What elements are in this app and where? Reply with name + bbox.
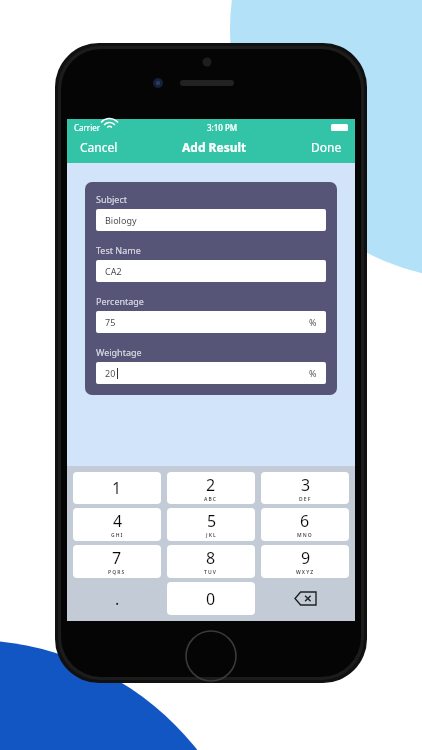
staticText: Subject	[96, 193, 128, 205]
staticText: 3	[301, 474, 311, 496]
staticText: Done	[311, 139, 342, 155]
button[interactable]: CA2	[96, 260, 326, 282]
staticText: %	[309, 316, 317, 328]
button[interactable]: 8	[167, 545, 255, 578]
staticText: %	[309, 367, 317, 379]
staticText: MNO	[297, 532, 313, 539]
staticText: WXYZ	[296, 569, 315, 576]
staticText: 1	[112, 477, 122, 499]
staticText: Percentage	[96, 295, 144, 307]
button[interactable]: 75	[96, 311, 326, 333]
button[interactable]: Delete	[258, 582, 352, 615]
button[interactable]: Done	[308, 136, 345, 158]
staticText: 0	[206, 588, 216, 610]
staticText: ABC	[204, 496, 218, 503]
staticText: 9	[301, 547, 311, 569]
staticText: Add Result	[182, 139, 247, 155]
button[interactable]: Cancel	[77, 136, 121, 158]
staticText: DEF	[299, 496, 312, 503]
button[interactable]: 1	[73, 472, 161, 504]
staticText: .	[115, 588, 120, 610]
staticText: JKL	[206, 532, 217, 539]
staticText: Carrier	[74, 122, 101, 133]
button[interactable]: 3	[261, 472, 349, 504]
staticText: PQRS	[108, 569, 126, 576]
staticText: 75	[105, 316, 116, 328]
staticText: Weightage	[96, 346, 142, 358]
staticText: Biology	[105, 214, 137, 226]
staticText: 8	[206, 547, 216, 569]
button[interactable]: 4	[73, 508, 161, 541]
staticText: CA2	[105, 265, 122, 277]
button[interactable]: 7	[73, 545, 161, 578]
staticText: 2	[206, 474, 216, 496]
staticText: GHI	[111, 532, 124, 539]
button[interactable]: 20	[96, 362, 326, 384]
staticText: 6	[300, 510, 310, 532]
button[interactable]: 5	[167, 508, 255, 541]
staticText: Cancel	[80, 139, 118, 155]
staticText: TUV	[204, 569, 218, 576]
staticText: 4	[113, 510, 123, 532]
staticText: 3:10 PM	[207, 122, 238, 133]
button[interactable]: Decimal point	[70, 582, 164, 615]
staticText: 20	[105, 367, 116, 379]
button[interactable]: 6	[261, 508, 349, 541]
button[interactable]: 0	[167, 582, 255, 615]
staticText: Test Name	[96, 244, 141, 256]
button[interactable]: 2	[167, 472, 255, 504]
button[interactable]: Biology	[96, 209, 326, 231]
staticText: 5	[207, 510, 217, 532]
staticText: 7	[112, 547, 122, 569]
button[interactable]: 9	[261, 545, 349, 578]
